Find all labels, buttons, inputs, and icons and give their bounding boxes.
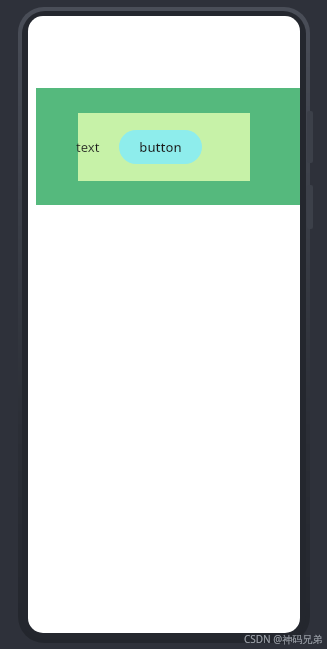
staticText: CSDN @神码兄弟 <box>244 632 323 646</box>
button[interactable]: button <box>119 130 202 164</box>
staticText: text <box>76 138 100 156</box>
staticText: button <box>139 138 182 156</box>
